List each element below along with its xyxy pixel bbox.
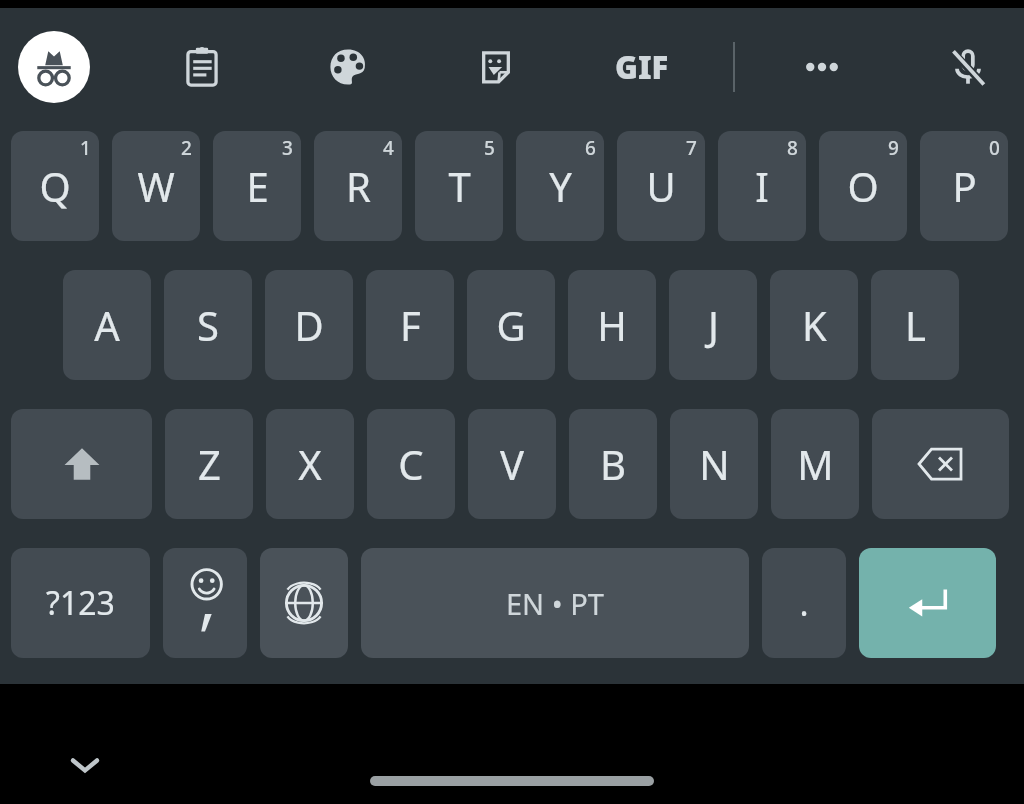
button[interactable]: C — [367, 409, 455, 519]
staticText: Y — [549, 159, 572, 213]
button[interactable]: R — [314, 131, 402, 241]
button[interactable]: I — [718, 131, 806, 241]
staticText: 6 — [585, 135, 596, 161]
staticText: 5 — [484, 135, 495, 161]
staticText: GIF — [615, 46, 669, 88]
button[interactable]: Clipboard — [166, 31, 238, 103]
button[interactable]: Backspace — [872, 409, 1009, 519]
button[interactable]: T — [415, 131, 503, 241]
button[interactable]: H — [568, 270, 656, 380]
staticText: T — [448, 159, 471, 213]
staticText: U — [646, 159, 676, 213]
button[interactable]: Hide keyboard — [56, 736, 114, 794]
button[interactable]: D — [265, 270, 353, 380]
button[interactable]: ?123 — [11, 548, 150, 658]
button[interactable]: Emoji — [163, 548, 247, 658]
staticText: B — [600, 437, 626, 491]
staticText: I — [755, 159, 769, 213]
button[interactable]: Voice input off — [932, 31, 1004, 103]
button[interactable]: Q — [11, 131, 99, 241]
button[interactable]: Incognito mode — [18, 31, 90, 103]
button[interactable]: W — [112, 131, 200, 241]
staticText: W — [137, 159, 175, 213]
button[interactable]: F — [366, 270, 454, 380]
button[interactable]: U — [617, 131, 705, 241]
staticText: ?123 — [46, 581, 115, 625]
staticText: P — [952, 159, 977, 213]
button[interactable]: GIF — [598, 31, 686, 103]
button[interactable]: S — [164, 270, 252, 380]
button[interactable]: Z — [165, 409, 253, 519]
button[interactable]: Stickers — [460, 31, 532, 103]
button[interactable]: A — [63, 270, 151, 380]
button[interactable]: Shift — [11, 409, 152, 519]
staticText: O — [847, 159, 879, 213]
staticText: X — [298, 437, 322, 491]
staticText: D — [294, 298, 324, 352]
button[interactable]: V — [468, 409, 556, 519]
button[interactable]: G — [467, 270, 555, 380]
button[interactable]: E — [213, 131, 301, 241]
staticText: 0 — [989, 135, 1000, 161]
staticText: L — [905, 298, 926, 352]
staticText: Z — [198, 437, 221, 491]
button[interactable]: J — [669, 270, 757, 380]
staticText: S — [197, 298, 219, 352]
staticText: 4 — [383, 135, 394, 161]
button[interactable]: Enter — [859, 548, 996, 658]
button[interactable]: K — [770, 270, 858, 380]
staticText: V — [500, 437, 524, 491]
staticText: 1 — [80, 135, 91, 161]
button[interactable]: More options — [786, 31, 858, 103]
staticText: Q — [39, 159, 71, 213]
staticText: A — [94, 298, 120, 352]
button[interactable]: L — [871, 270, 959, 380]
staticText: . — [799, 580, 809, 626]
staticText: C — [398, 437, 424, 491]
button[interactable]: P — [920, 131, 1008, 241]
button[interactable]: X — [266, 409, 354, 519]
staticText: EN • PT — [506, 584, 604, 623]
button[interactable]: EN • PT — [361, 548, 749, 658]
button[interactable]: . — [762, 548, 846, 658]
button[interactable]: N — [670, 409, 758, 519]
staticText: 8 — [787, 135, 798, 161]
staticText: K — [802, 298, 827, 352]
staticText: M — [797, 437, 834, 491]
staticText: N — [699, 437, 730, 491]
staticText: R — [346, 159, 371, 213]
staticText: F — [400, 298, 421, 352]
staticText: 7 — [686, 135, 697, 161]
button[interactable]: Change language — [260, 548, 348, 658]
button[interactable]: M — [771, 409, 859, 519]
button[interactable]: Y — [516, 131, 604, 241]
staticText: H — [597, 298, 627, 352]
button[interactable]: B — [569, 409, 657, 519]
button[interactable]: O — [819, 131, 907, 241]
staticText: 3 — [282, 135, 293, 161]
staticText: 9 — [888, 135, 899, 161]
staticText: G — [496, 298, 526, 352]
staticText: 2 — [181, 135, 192, 161]
staticText: E — [246, 159, 269, 213]
staticText: J — [708, 298, 719, 352]
button[interactable]: Theme — [312, 31, 384, 103]
